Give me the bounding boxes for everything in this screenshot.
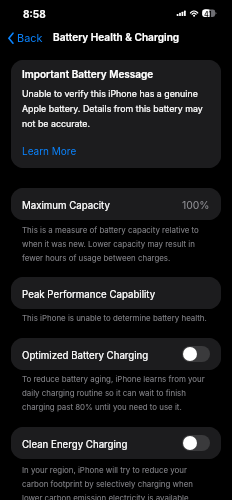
staticText: Peak Performance Capability (22, 289, 156, 301)
staticText: In your region, iPhone will try to reduc… (22, 462, 214, 500)
button[interactable]: Learn More (22, 145, 77, 157)
other: Battery 41 percent (201, 9, 219, 18)
button[interactable]: Maximum Capacity (11, 188, 221, 220)
staticText: Optimized Battery Charging (22, 350, 149, 362)
other: Cellular signal (176, 10, 187, 18)
staticText: This iPhone is unable to determine batte… (22, 310, 207, 324)
other: Wi-Fi (189, 9, 200, 18)
button[interactable]: Clean Energy Charging (11, 427, 221, 459)
staticText: Important Battery Message (22, 68, 154, 80)
staticText: Maximum Capacity (22, 200, 110, 212)
staticText: This is a measure of battery capacity re… (22, 222, 214, 264)
button[interactable]: Toggle (182, 346, 210, 362)
staticText: Back (17, 31, 43, 44)
staticText: 100% (182, 199, 210, 212)
button[interactable]: Back (3, 26, 49, 48)
staticText: Battery Health & Charging (53, 31, 180, 43)
staticText: 41 (204, 10, 212, 18)
staticText: Clean Energy Charging (22, 439, 128, 451)
staticText: 8:58 (23, 8, 46, 20)
button[interactable]: Optimized Battery Charging (11, 338, 221, 370)
staticText: To reduce battery aging, iPhone learns f… (22, 371, 214, 413)
staticText: Unable to verify this iPhone has a genui… (22, 85, 210, 130)
button[interactable]: Toggle (182, 435, 210, 451)
button[interactable]: Peak Performance Capability (11, 277, 221, 309)
